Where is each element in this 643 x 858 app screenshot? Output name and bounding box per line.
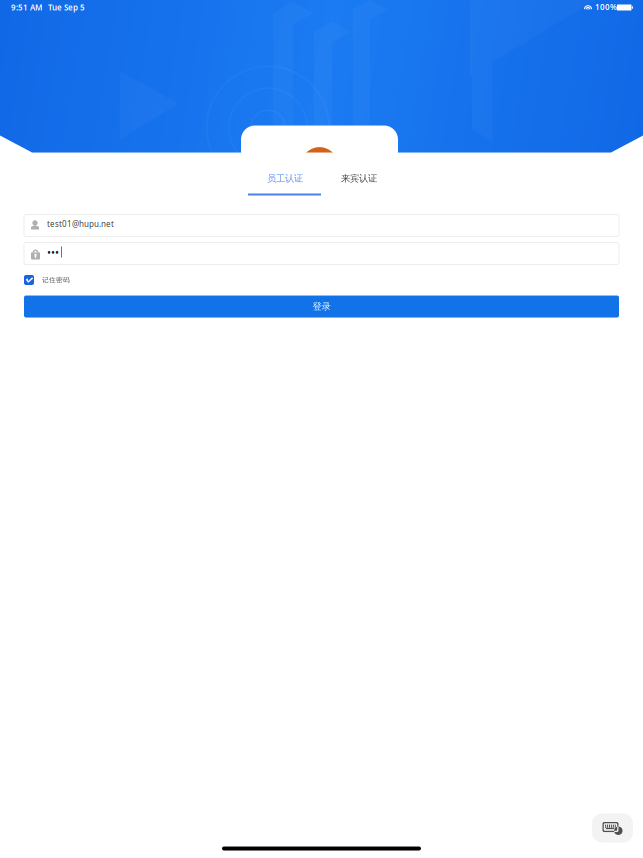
staticText: 9:51 AM — [11, 2, 42, 13]
button[interactable]: 员工认证 — [248, 171, 322, 185]
staticText: 员工认证 — [267, 173, 303, 184]
staticText: Tue Sep 5 — [48, 2, 85, 13]
staticText: ••• — [47, 245, 59, 260]
staticText: 100% — [595, 2, 617, 12]
button[interactable]: Dismiss keyboard — [592, 813, 633, 842]
staticText: test01@hupu.net — [47, 219, 114, 229]
button[interactable]: 来宾认证 — [322, 171, 396, 185]
button[interactable]: test01@hupu.net — [47, 218, 167, 229]
button[interactable]: 登录 — [24, 295, 619, 317]
staticText: 记住密码 — [42, 276, 70, 284]
staticText: 来宾认证 — [341, 173, 377, 184]
button[interactable]: ••• — [47, 248, 87, 256]
staticText: 登录 — [312, 301, 330, 312]
button[interactable]: 记住密码 — [24, 274, 224, 285]
